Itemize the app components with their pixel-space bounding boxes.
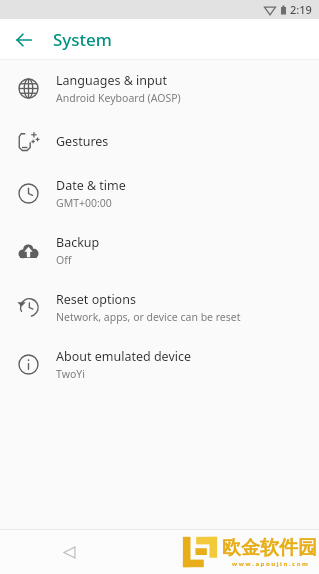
button[interactable]: Gestures bbox=[0, 117, 319, 165]
staticText: Off bbox=[56, 253, 72, 267]
staticText: Gestures bbox=[56, 133, 109, 150]
button[interactable]: Back bbox=[54, 537, 84, 567]
staticText: 欧金软件园 bbox=[222, 536, 317, 560]
staticText: Android Keyboard (AOSP) bbox=[56, 91, 181, 105]
staticText: Date & time bbox=[56, 177, 126, 194]
staticText: Languages & input bbox=[56, 72, 167, 89]
button[interactable]: Reset options bbox=[0, 279, 319, 336]
button[interactable]: Backup bbox=[0, 222, 319, 279]
staticText: Network, apps, or device can be reset bbox=[56, 310, 241, 324]
button[interactable]: Languages & input bbox=[0, 60, 319, 117]
staticText: w w w . a p o u j i n . c o m bbox=[232, 560, 308, 568]
staticText: GMT+00:00 bbox=[56, 196, 112, 210]
staticText: TwoYi bbox=[56, 367, 85, 381]
button[interactable]: Back bbox=[8, 24, 40, 56]
staticText: Reset options bbox=[56, 291, 136, 308]
staticText: About emulated device bbox=[56, 348, 192, 365]
staticText: System bbox=[53, 28, 112, 51]
button[interactable]: About emulated device bbox=[0, 336, 319, 393]
button[interactable]: Date & time bbox=[0, 165, 319, 222]
staticText: Backup bbox=[56, 234, 100, 251]
staticText: 2:19 bbox=[290, 2, 312, 17]
